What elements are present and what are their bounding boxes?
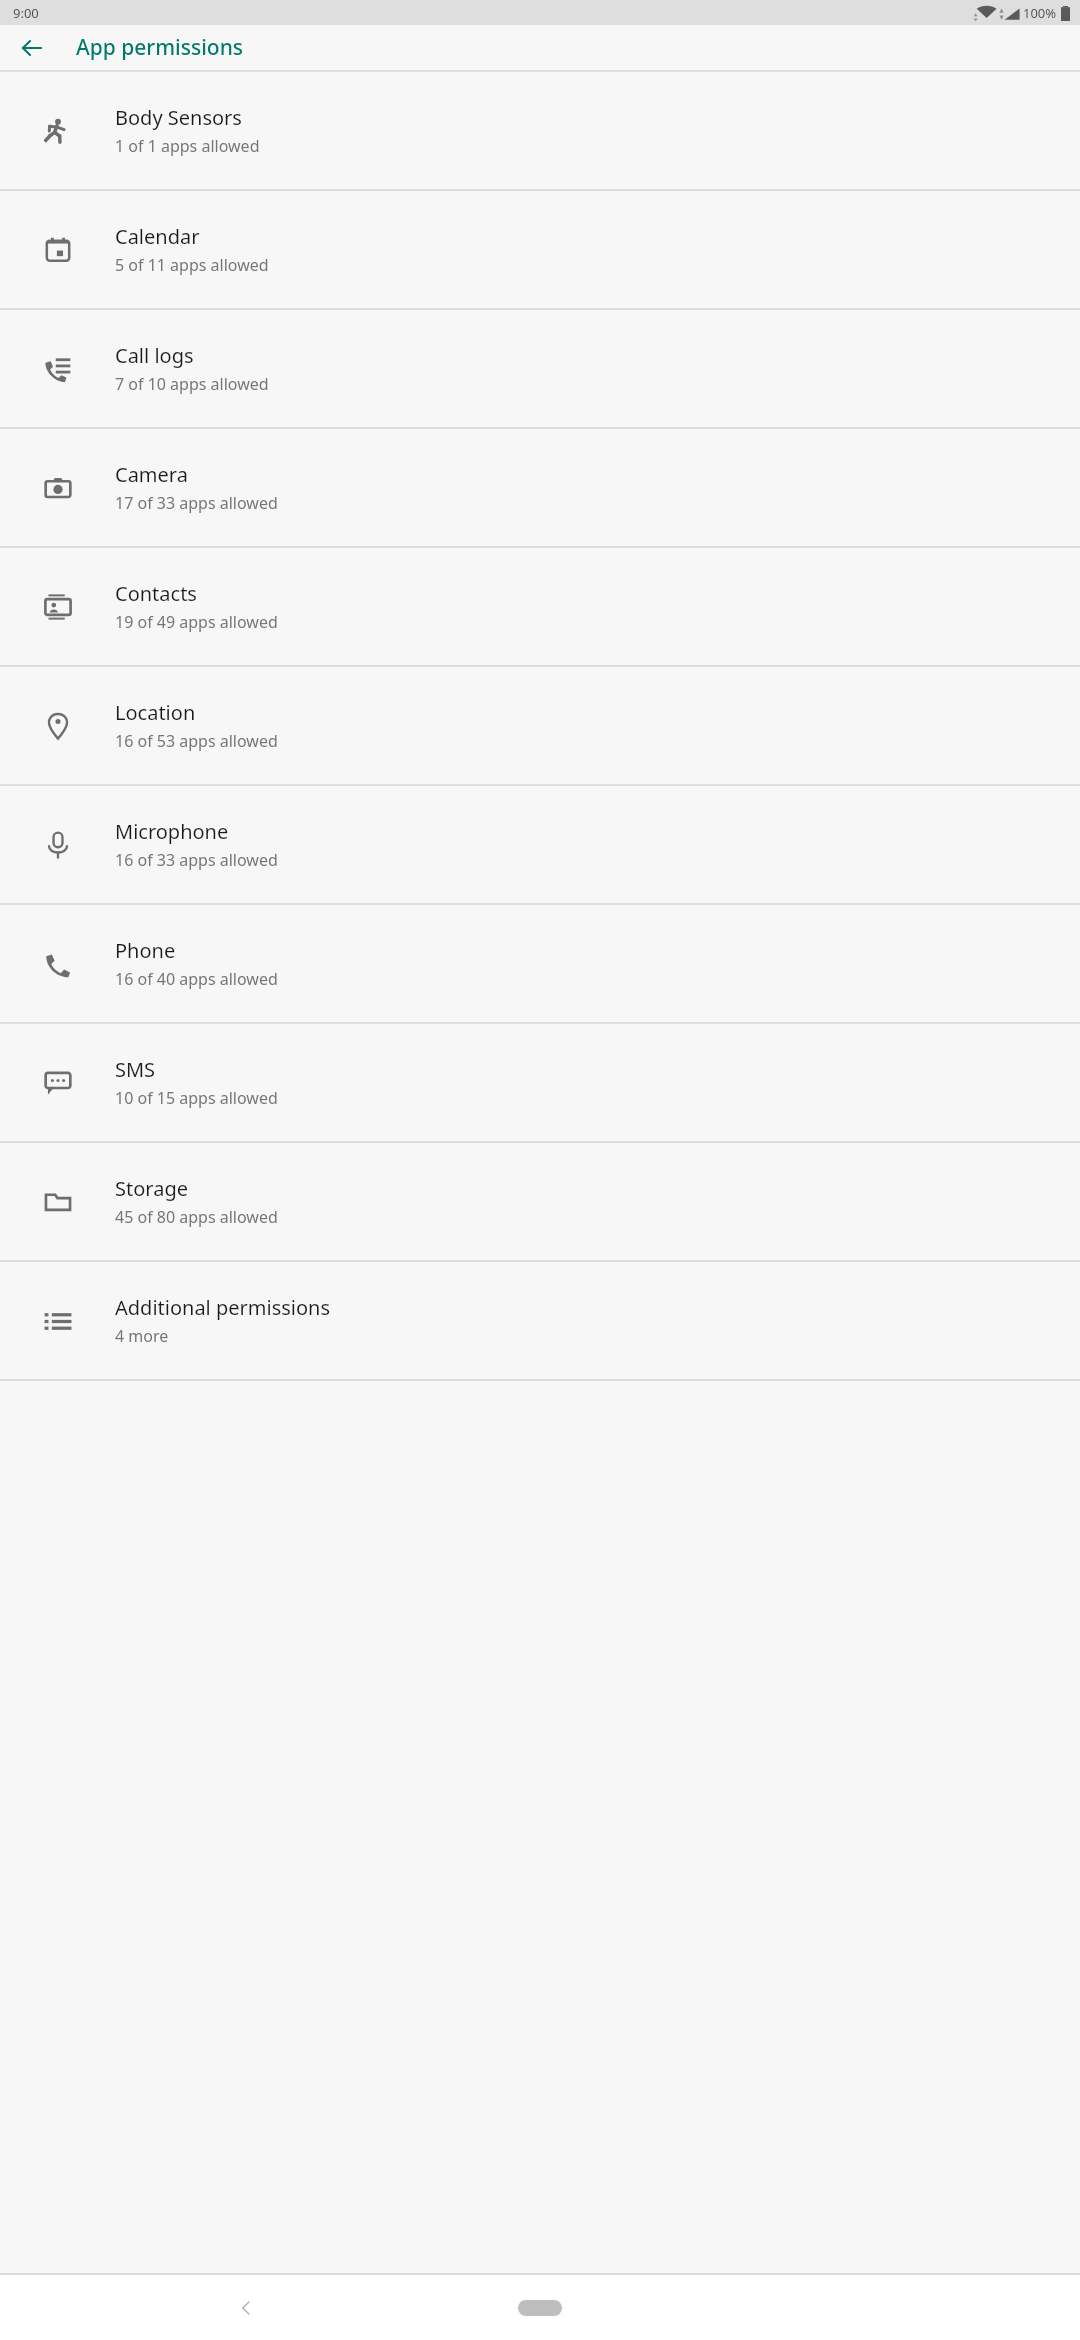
staticText: 45 of 80 apps allowed (115, 1206, 278, 1228)
staticText: Calendar (115, 223, 200, 250)
staticText: 19 of 49 apps allowed (115, 611, 278, 633)
staticText: App permissions (76, 33, 244, 62)
staticText: Storage (115, 1175, 188, 1202)
button[interactable]: Back (220, 2282, 272, 2334)
button[interactable]: Home (506, 2293, 574, 2323)
button[interactable]: Camera (0, 429, 1080, 546)
staticText: Call logs (115, 342, 194, 369)
staticText: 16 of 40 apps allowed (115, 968, 278, 990)
button[interactable]: Contacts (0, 548, 1080, 665)
staticText: 16 of 33 apps allowed (115, 849, 278, 871)
staticText: SMS (115, 1056, 156, 1083)
staticText: Phone (115, 937, 176, 964)
button[interactable]: Calendar (0, 191, 1080, 308)
button[interactable]: Location (0, 667, 1080, 784)
staticText: Camera (115, 461, 188, 488)
button[interactable]: Microphone (0, 786, 1080, 903)
staticText: 17 of 33 apps allowed (115, 492, 278, 514)
staticText: Additional permissions (115, 1294, 331, 1321)
staticText: Body Sensors (115, 104, 242, 131)
staticText: 9:00 (13, 4, 39, 22)
button[interactable]: Call logs (0, 310, 1080, 427)
button[interactable]: SMS (0, 1024, 1080, 1141)
staticText: 4 more (115, 1325, 169, 1347)
staticText: 7 of 10 apps allowed (115, 373, 269, 395)
staticText: 100% (1023, 4, 1057, 22)
staticText: Location (115, 699, 196, 726)
staticText: Contacts (115, 580, 197, 607)
staticText: 5 of 11 apps allowed (115, 254, 269, 276)
staticText: 16 of 53 apps allowed (115, 730, 278, 752)
button[interactable]: Body Sensors (0, 72, 1080, 189)
button[interactable]: Additional permissions (0, 1262, 1080, 1379)
staticText: 1 of 1 apps allowed (115, 135, 260, 157)
button[interactable]: Storage (0, 1143, 1080, 1260)
button[interactable]: Phone (0, 905, 1080, 1022)
staticText: 10 of 15 apps allowed (115, 1087, 278, 1109)
button[interactable]: Back (8, 25, 56, 70)
staticText: Microphone (115, 818, 229, 845)
